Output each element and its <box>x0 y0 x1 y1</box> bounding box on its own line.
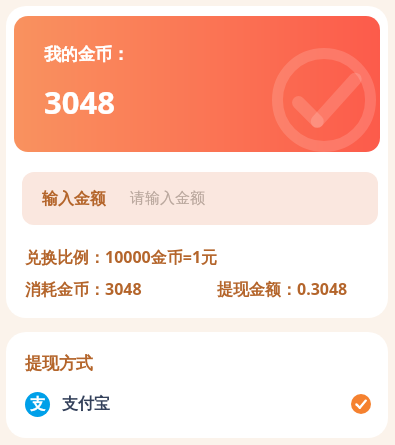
staticText: 3048 <box>44 81 115 123</box>
staticText: 提现金额：0.3048 <box>217 278 348 300</box>
button[interactable]: 输入金额 <box>22 172 378 225</box>
button[interactable]: Selected <box>351 394 371 414</box>
staticText: 提现方式 <box>25 353 93 374</box>
staticText: 消耗金币：3048 <box>25 278 142 300</box>
staticText: 支 <box>30 395 45 414</box>
staticText: 请输入金额 <box>130 189 205 208</box>
staticText: 我的金币： <box>44 44 129 65</box>
staticText: 支付宝 <box>62 394 110 414</box>
staticText: 输入金额 <box>42 189 106 209</box>
staticText: 兑换比例：10000金币=1元 <box>25 246 218 268</box>
button[interactable]: 我的金币： <box>14 16 380 152</box>
button[interactable]: 支 <box>6 384 388 424</box>
